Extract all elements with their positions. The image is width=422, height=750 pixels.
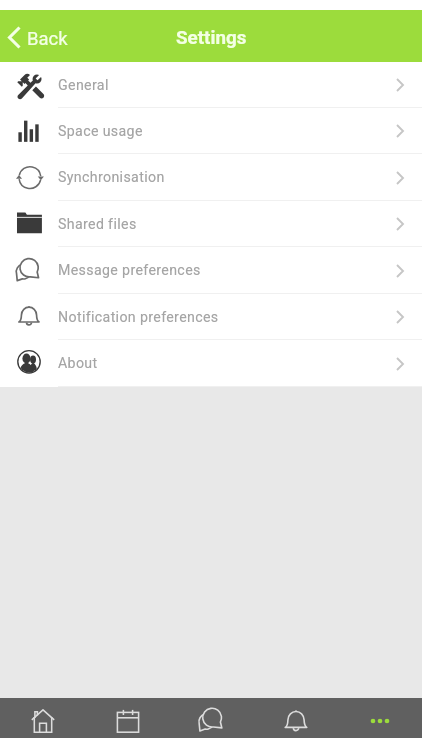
button[interactable]: Synchronisation [0,154,422,201]
button[interactable]: More [338,698,422,738]
staticText: Notification preferences [58,309,219,326]
button[interactable]: About [0,340,422,387]
staticText: Back [27,28,68,50]
button[interactable]: Calendar [85,698,170,738]
button[interactable]: General [0,62,422,108]
button[interactable]: Message preferences [0,247,422,294]
staticText: Space usage [58,123,143,140]
staticText: Message preferences [58,262,201,279]
button[interactable]: Notifications [254,698,338,738]
staticText: Settings [176,27,247,49]
button[interactable]: Space usage [0,108,422,154]
staticText: Shared files [58,216,137,233]
button[interactable]: Notification preferences [0,294,422,340]
button[interactable]: Home [0,698,85,738]
button[interactable]: Messages [170,698,254,738]
staticText: Synchronisation [58,169,165,186]
staticText: About [58,355,98,372]
button[interactable]: Shared files [0,201,422,247]
staticText: General [58,77,109,94]
button[interactable]: Back [0,22,80,55]
